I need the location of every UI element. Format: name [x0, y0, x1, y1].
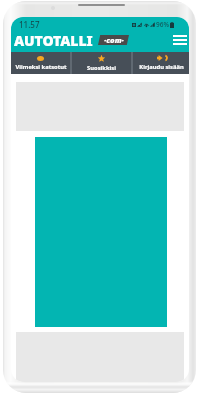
staticText: 96%: [156, 20, 169, 29]
staticText: 11.57: [19, 19, 40, 30]
staticText: Viimeksi katsotut: [15, 63, 67, 71]
staticText: Suosikkisi: [87, 64, 116, 72]
button[interactable]: Suosikkisi: [72, 52, 131, 74]
button[interactable]: Kirjaudu sisään: [133, 52, 189, 74]
staticText: ·com·: [104, 35, 124, 45]
staticText: AUTOTALLI: [14, 31, 93, 50]
button[interactable]: Menu: [170, 31, 189, 48]
button[interactable]: Viimeksi katsotut: [11, 52, 70, 74]
staticText: Kirjaudu sisään: [139, 63, 184, 71]
